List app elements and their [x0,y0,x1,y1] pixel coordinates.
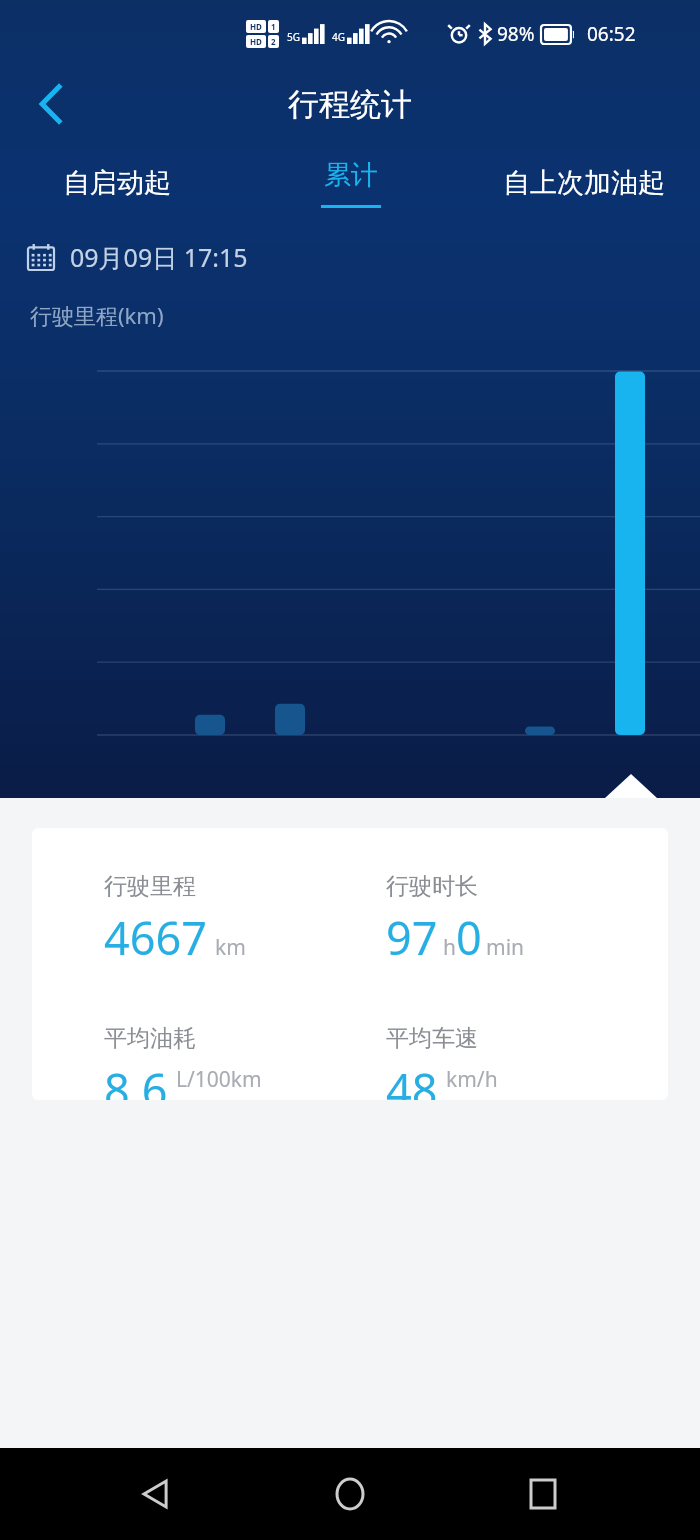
button[interactable]: 行驶里程 [104,872,386,968]
staticText: 0 [456,907,482,968]
staticText: 97 [386,907,438,968]
staticText: 平均车速 [386,1024,478,1053]
button[interactable]: 最近任务 [507,1458,579,1530]
staticText: 06:52 [587,21,636,47]
button[interactable]: 自上次加油起 [467,140,700,226]
button[interactable]: 累计 [234,140,467,226]
button[interactable]: 返回 [22,74,82,134]
staticText: 5G [287,30,300,44]
staticText: 09月09日 17:15 [70,240,248,274]
staticText: 行驶时长 [386,872,478,901]
staticText: HD [250,36,262,47]
staticText: 1 [271,21,276,32]
staticText: 累计 [324,158,378,192]
staticText: 48 [386,1059,438,1100]
button[interactable]: 行驶时长 [386,872,668,968]
staticText: 行驶里程 [104,872,196,901]
staticText: km [215,933,246,962]
staticText: 2 [271,36,276,47]
button[interactable]: 自启动起 [0,140,234,226]
button[interactable]: 平均车速 [386,1024,668,1100]
button[interactable]: 平均油耗 [104,1024,386,1100]
staticText: h [443,933,456,962]
staticText: 平均油耗 [104,1024,196,1053]
staticText: L/100km [176,1065,262,1094]
staticText: km/h [446,1065,498,1094]
staticText: 4G [332,30,345,44]
button[interactable]: 返回 [121,1458,193,1530]
button[interactable]: 主页 [314,1458,386,1530]
staticText: 4667 [104,907,207,968]
staticText: 行程统计 [288,85,412,124]
staticText: 8.6 [104,1059,168,1100]
staticText: 行驶里程(km) [30,300,164,330]
staticText: 自上次加油起 [503,166,665,200]
staticText: 自启动起 [63,166,171,200]
staticText: HD [250,21,262,32]
staticText: 98% [497,21,535,47]
staticText: min [486,933,525,962]
